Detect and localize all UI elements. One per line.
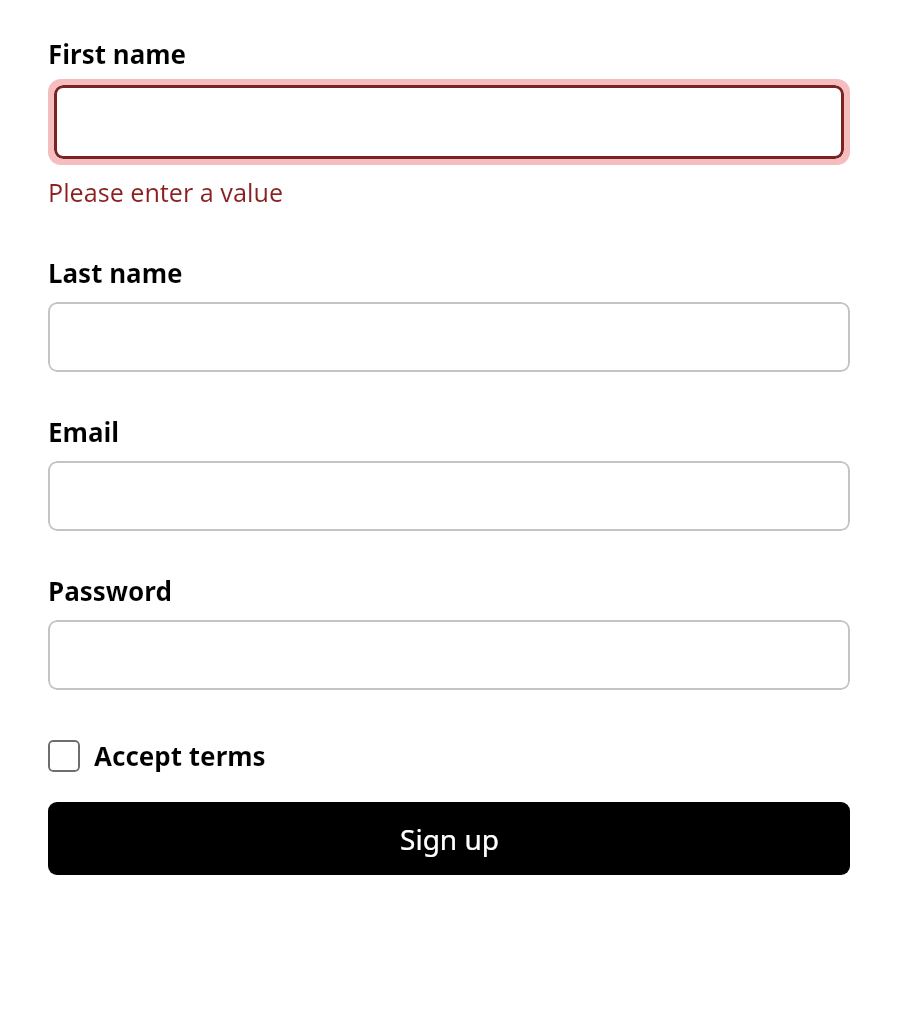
staticText: Password bbox=[48, 573, 172, 608]
staticText: Please enter a value bbox=[48, 175, 284, 209]
button[interactable] bbox=[48, 620, 850, 690]
staticText: Last name bbox=[48, 255, 183, 290]
staticText: Sign up bbox=[400, 820, 499, 858]
button[interactable]: Sign up bbox=[48, 802, 850, 875]
button[interactable] bbox=[54, 85, 844, 159]
staticText: Email bbox=[48, 414, 120, 449]
button[interactable]: Accept terms bbox=[48, 736, 266, 775]
staticText: First name bbox=[48, 36, 187, 71]
button[interactable] bbox=[48, 461, 850, 531]
button[interactable] bbox=[48, 302, 850, 372]
staticText: Accept terms bbox=[94, 738, 266, 773]
